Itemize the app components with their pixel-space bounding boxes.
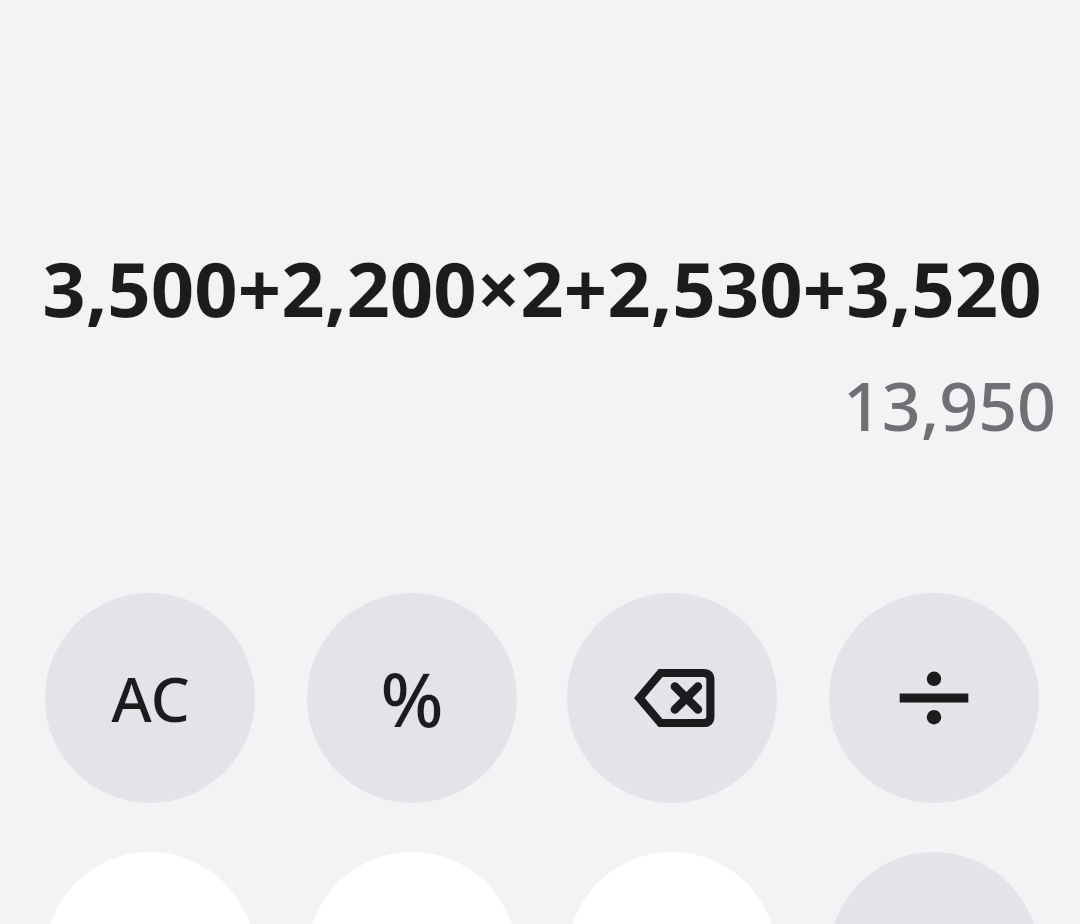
button[interactable]: 7 <box>45 852 255 924</box>
staticText: 13,950 <box>28 358 1056 451</box>
button[interactable]: 8 <box>307 852 517 924</box>
button[interactable]: Divide <box>829 593 1039 803</box>
staticText: % <box>380 648 444 749</box>
staticText: AC <box>111 656 190 740</box>
button[interactable]: Backspace <box>567 593 777 803</box>
button[interactable]: 9 <box>567 852 777 924</box>
button[interactable]: % <box>307 593 517 803</box>
button[interactable]: Multiply <box>829 852 1039 924</box>
staticText: 3,500+2,200×2+2,530+3,520 <box>28 236 1056 340</box>
button[interactable]: AC <box>45 593 255 803</box>
